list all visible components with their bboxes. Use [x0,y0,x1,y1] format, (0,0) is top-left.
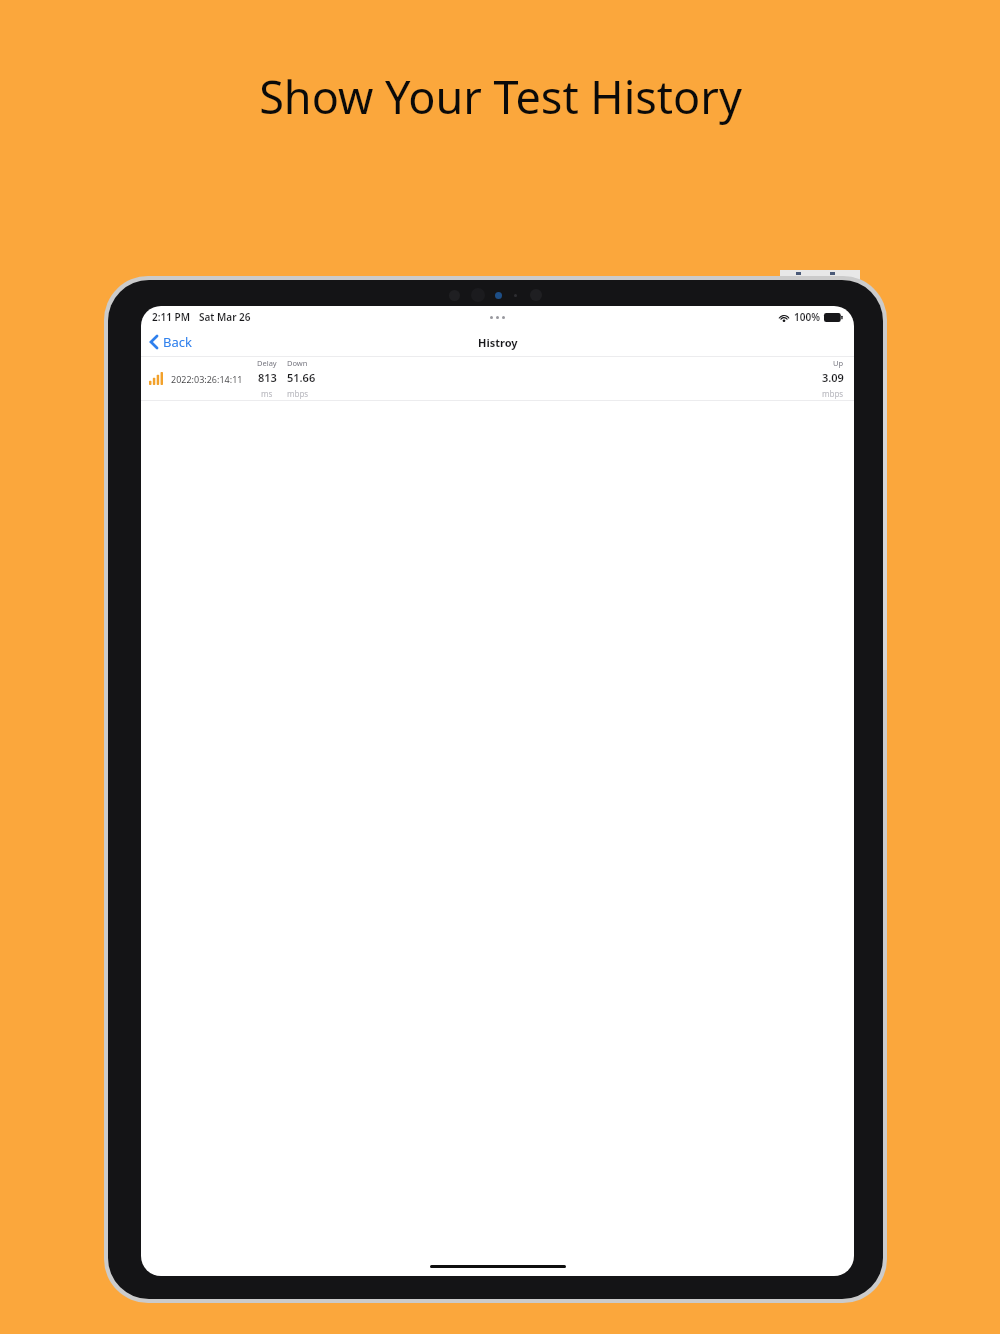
staticText: mbps [822,388,844,399]
staticText: mbps [287,388,309,399]
staticText: Show Your Test History [259,66,742,127]
other: Signal strength [149,372,163,385]
staticText: 51.66 [287,370,316,385]
staticText: 813 [258,370,277,385]
other: Wi-Fi [778,313,790,322]
button[interactable]: Signal strength [141,357,854,400]
staticText: 2:11 PM [152,310,190,324]
staticText: ms [261,388,273,399]
staticText: 2022:03:26:14:11 [171,373,243,385]
staticText: Up [833,358,844,368]
other: Battery full [824,313,843,322]
staticText: Sat Mar 26 [199,310,251,324]
staticText: Histroy [478,335,518,350]
staticText: Down [287,358,308,368]
staticText: 3.09 [822,370,844,385]
staticText: Delay [257,358,277,368]
staticText: Back [163,333,192,351]
button[interactable]: Histroy [478,335,518,350]
staticText: 100% [794,310,820,324]
button[interactable]: Back [141,329,202,355]
